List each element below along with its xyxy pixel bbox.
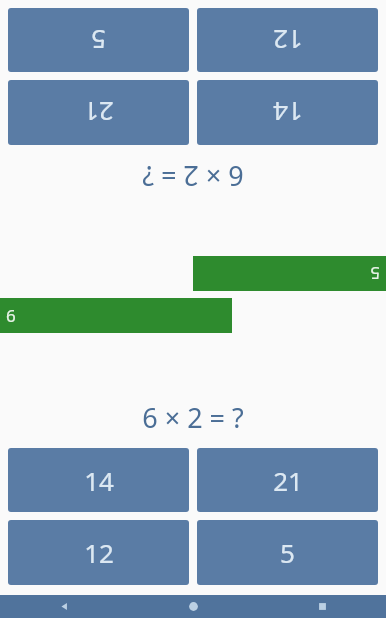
button[interactable]: 12 <box>197 8 378 72</box>
staticText: 21 <box>84 95 114 130</box>
staticText: 14 <box>273 95 303 130</box>
button[interactable]: 5 <box>8 8 189 72</box>
button[interactable]: 14 <box>197 80 378 145</box>
staticText: 14 <box>84 463 114 498</box>
button[interactable]: 12 <box>8 520 189 585</box>
button[interactable]: 14 <box>8 448 189 512</box>
staticText: 6 <box>6 304 16 327</box>
staticText: 6 × 2 = ? <box>142 399 244 436</box>
staticText: 5 <box>370 262 380 285</box>
button[interactable]: 5 <box>197 520 378 585</box>
staticText: 12 <box>273 23 303 58</box>
staticText: 21 <box>273 463 303 498</box>
button[interactable]: 21 <box>8 80 189 145</box>
button[interactable]: Back <box>51 595 77 618</box>
button[interactable]: Home <box>180 595 206 618</box>
staticText: 5 <box>280 535 295 570</box>
staticText: 12 <box>84 535 114 570</box>
button[interactable]: 21 <box>197 448 378 512</box>
staticText: 6 × 2 = ? <box>142 158 244 195</box>
button[interactable]: Recent apps <box>309 595 335 618</box>
staticText: 5 <box>91 23 106 58</box>
